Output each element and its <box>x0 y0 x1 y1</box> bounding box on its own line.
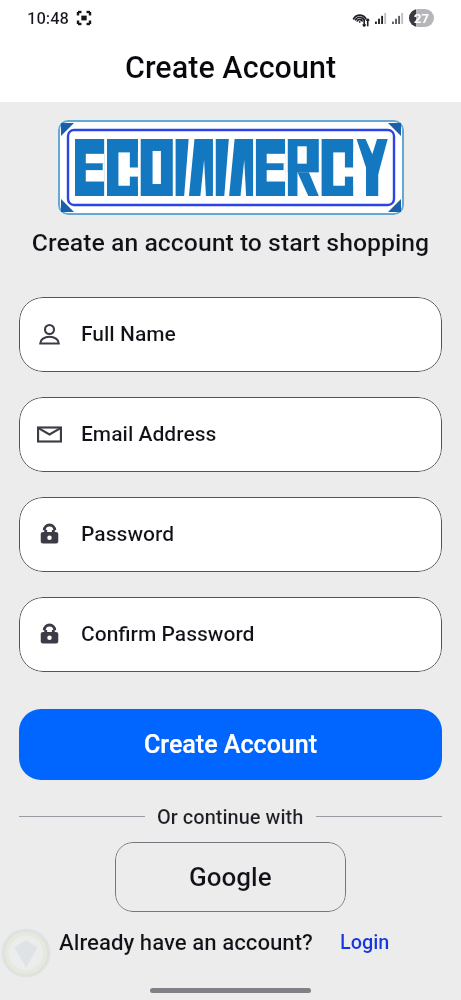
staticText: Or continue with <box>157 805 304 828</box>
button[interactable]: Google <box>115 842 346 912</box>
button[interactable]: Password <box>19 497 442 572</box>
staticText: Create an account to start shopping <box>0 228 461 257</box>
staticText: Password <box>81 522 175 547</box>
staticText: Create Account <box>125 50 337 86</box>
button[interactable]: Email Address <box>19 397 442 472</box>
staticText: Email Address <box>81 422 217 447</box>
staticText: Google <box>189 862 272 892</box>
button[interactable]: Full Name <box>19 297 442 372</box>
button[interactable]: Create Account <box>19 709 442 780</box>
staticText: 10:48 <box>27 9 69 28</box>
button[interactable]: Confirm Password <box>19 597 442 672</box>
staticText: Login <box>340 931 390 954</box>
staticText: Create Account <box>144 730 317 759</box>
button[interactable]: Login <box>313 931 403 954</box>
other: Screen recorder <box>77 11 91 25</box>
staticText: Confirm Password <box>81 622 255 647</box>
staticText: Full Name <box>81 322 176 347</box>
staticText: Already have an account? <box>59 929 313 955</box>
staticText: 27 <box>414 11 429 26</box>
